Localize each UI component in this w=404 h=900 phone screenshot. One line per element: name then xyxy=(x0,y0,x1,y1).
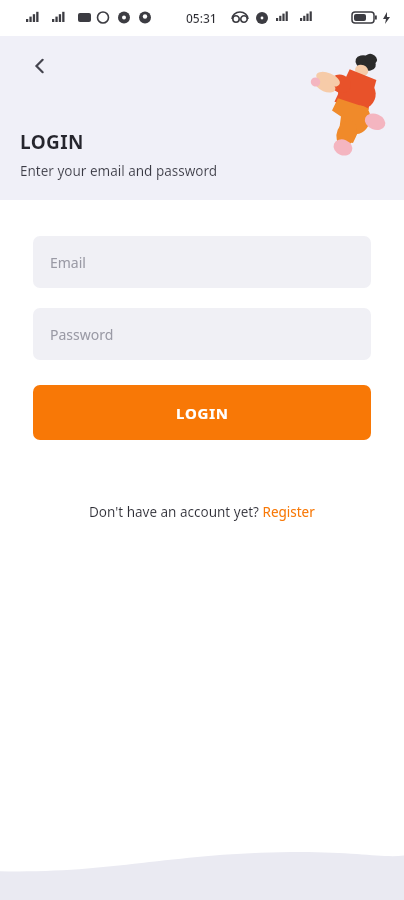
staticText: LOGIN xyxy=(176,403,229,423)
button[interactable]: Don't have an account yet? Register xyxy=(83,497,321,527)
staticText: Enter your email and password xyxy=(20,162,218,180)
button[interactable]: Password xyxy=(33,308,371,360)
staticText: Don't have an account yet? Register xyxy=(89,503,315,521)
button[interactable]: LOGIN xyxy=(33,385,371,440)
staticText: LOGIN xyxy=(20,129,84,155)
staticText: Email xyxy=(50,253,86,272)
button[interactable]: Back xyxy=(18,44,62,88)
staticText: Password xyxy=(50,325,114,344)
button[interactable]: Email xyxy=(33,236,371,288)
staticText: 05:31 xyxy=(186,10,217,26)
